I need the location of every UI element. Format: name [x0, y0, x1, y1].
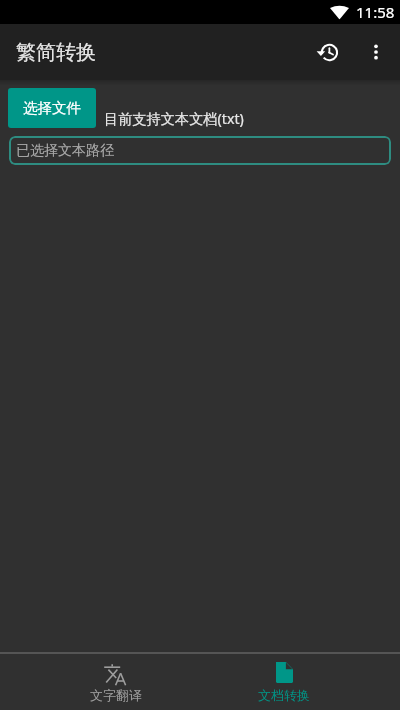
staticText: 文字翻译 [90, 687, 142, 703]
button[interactable]: 文字翻译 [0, 654, 200, 710]
staticText: 已选择文本路径 [16, 142, 114, 160]
staticText: 选择文件 [23, 99, 81, 117]
button[interactable]: 选择文件 [8, 88, 96, 128]
staticText: 目前支持文本文档(txt) [104, 109, 244, 128]
button[interactable]: 已选择文本路径 [9, 136, 391, 165]
button[interactable]: History [304, 28, 352, 76]
staticText: 11:58 [356, 2, 395, 22]
staticText: 繁简转换 [16, 40, 96, 65]
staticText: 文档转换 [258, 687, 310, 703]
button[interactable]: 文档转换 [200, 654, 400, 710]
button[interactable]: More options [352, 28, 400, 76]
